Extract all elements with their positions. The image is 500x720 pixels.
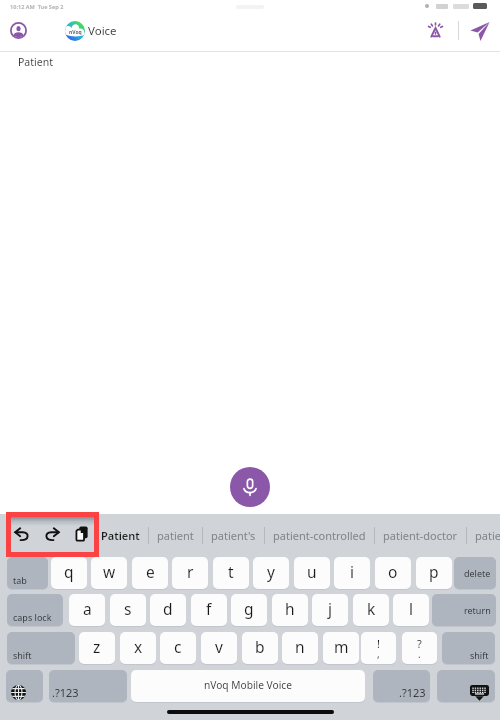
staticText: w [103, 561, 116, 582]
staticText: k [367, 598, 376, 619]
staticText: tab [13, 574, 27, 586]
staticText: a [83, 598, 92, 619]
staticText: y [267, 561, 275, 582]
staticText: shift [470, 649, 489, 661]
button[interactable]: n [282, 632, 318, 664]
button[interactable]: x [120, 632, 156, 664]
other: Change keyboard [11, 685, 26, 700]
button[interactable]: .?123 [373, 670, 430, 702]
button[interactable]: c [160, 632, 196, 664]
staticText: nVoq Mobile Voice [204, 678, 292, 692]
button[interactable]: w [91, 557, 127, 589]
staticText: m [334, 636, 349, 657]
staticText: q [64, 561, 74, 582]
button[interactable]: Send [466, 17, 494, 45]
staticText: Patient [18, 55, 53, 69]
button[interactable]: Hide keyboard [437, 670, 495, 702]
staticText: e [146, 561, 155, 582]
staticText: 10:12 AM Tue Sep 2 [10, 3, 64, 11]
staticText: v [215, 636, 223, 657]
button[interactable]: caps lock [7, 594, 63, 626]
staticText: g [244, 598, 254, 619]
button[interactable]: l [393, 594, 429, 626]
button[interactable]: e [132, 557, 168, 589]
staticText: n [295, 636, 305, 657]
staticText: o [388, 561, 398, 582]
staticText: h [285, 598, 295, 619]
button[interactable]: s [110, 594, 146, 626]
other: Hide keyboard [470, 685, 489, 701]
button[interactable]: tab [7, 557, 48, 589]
staticText: . [418, 647, 421, 661]
button[interactable]: q [51, 557, 87, 589]
staticText: nVoq [69, 29, 82, 36]
staticText: .?123 [52, 685, 79, 700]
button[interactable]: r [172, 557, 208, 589]
button[interactable]: f [191, 594, 227, 626]
button[interactable]: b [242, 632, 278, 664]
button[interactable]: patient [149, 513, 202, 557]
staticText: patient [475, 528, 500, 543]
button[interactable]: Record [230, 467, 270, 507]
staticText: r [187, 561, 194, 582]
staticText: p [429, 561, 439, 582]
button[interactable]: v [201, 632, 237, 664]
staticText: .?123 [399, 685, 426, 700]
button[interactable]: patient-controlled [265, 513, 374, 557]
staticText: b [255, 636, 265, 657]
button[interactable]: z [79, 632, 115, 664]
button[interactable]: g [231, 594, 267, 626]
staticText: j [328, 598, 332, 619]
button[interactable]: h [272, 594, 308, 626]
staticText: d [163, 598, 173, 619]
button[interactable]: Account [7, 19, 30, 42]
staticText: caps lock [13, 611, 52, 623]
button[interactable]: d [150, 594, 186, 626]
staticText: Patient [101, 528, 140, 543]
staticText: s [124, 598, 132, 619]
button[interactable]: Patient [93, 513, 148, 557]
staticText: x [134, 636, 143, 657]
button[interactable]: a [69, 594, 105, 626]
button[interactable]: Dictation assistant [424, 18, 447, 41]
staticText: u [307, 561, 317, 582]
button[interactable]: .?123 [49, 670, 127, 702]
staticText: shift [13, 649, 32, 661]
button[interactable]: patient's [203, 513, 264, 557]
button[interactable]: delete [454, 557, 496, 589]
button[interactable]: p [416, 557, 452, 589]
button[interactable]: ! [361, 632, 396, 664]
staticText: delete [464, 567, 491, 579]
button[interactable]: Undo [13, 525, 31, 543]
button[interactable]: t [213, 557, 249, 589]
button[interactable]: Redo [43, 525, 61, 543]
button[interactable]: patient-doctor [375, 513, 466, 557]
button[interactable]: y [253, 557, 289, 589]
staticText: patient-controlled [273, 528, 366, 543]
button[interactable]: j [312, 594, 348, 626]
button[interactable]: Paste [73, 524, 92, 543]
button[interactable]: o [375, 557, 411, 589]
staticText: patient [157, 528, 194, 543]
button[interactable]: m [323, 632, 359, 664]
button[interactable]: u [294, 557, 330, 589]
button[interactable]: i [334, 557, 370, 589]
button[interactable]: Change keyboard [6, 670, 43, 702]
staticText: t [228, 561, 234, 582]
staticText: return [464, 604, 491, 616]
staticText: i [350, 561, 354, 582]
button[interactable]: ? [402, 632, 437, 664]
staticText: Voice [88, 23, 117, 39]
button[interactable]: k [353, 594, 389, 626]
staticText: l [409, 598, 413, 619]
button[interactable]: patient [467, 513, 500, 557]
button[interactable]: shift [7, 632, 75, 664]
staticText: z [93, 636, 101, 657]
button[interactable]: nVoq Mobile Voice [131, 670, 365, 702]
staticText: patient-doctor [383, 528, 458, 543]
button[interactable]: return [432, 594, 496, 626]
staticText: c [174, 636, 182, 657]
staticText: ? [417, 636, 422, 651]
staticText: ! [377, 636, 380, 651]
button[interactable]: shift [442, 632, 495, 664]
